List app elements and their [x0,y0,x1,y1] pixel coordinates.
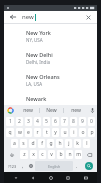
button[interactable]: z [20,150,28,159]
button[interactable]: y [52,128,59,137]
button[interactable]: g [47,139,54,148]
button[interactable]: f [38,139,45,148]
staticText: y [54,129,57,136]
button[interactable]: Back [8,12,18,22]
button[interactable]: Backspace [84,150,95,159]
button[interactable]: e [25,128,32,137]
staticText: k [76,140,79,147]
button[interactable]: c [39,150,46,159]
button[interactable]: Recent apps [62,172,74,183]
button[interactable]: 6 [52,117,59,126]
staticText: t [46,129,48,136]
button[interactable]: r [34,128,41,137]
button[interactable]: ?123 [5,161,19,171]
staticText: Newark [26,95,47,102]
staticText: ?123 [8,164,17,169]
button[interactable]: Shift [6,150,18,159]
button[interactable]: 0 [88,117,95,126]
button[interactable]: j [65,139,72,148]
button[interactable]: 4 [34,117,41,126]
staticText: Delhi, India [26,59,51,65]
button[interactable]: 3 [25,117,32,126]
button[interactable]: 1 [6,117,14,126]
button[interactable]: q [6,128,14,137]
button[interactable]: w [16,128,23,137]
button[interactable]: New Delhi [4,49,97,67]
staticText: . [76,163,78,170]
button[interactable]: New Orleans [4,71,97,89]
button[interactable]: v [48,150,55,159]
button[interactable]: Screenshot [80,172,92,183]
button[interactable]: i [70,128,77,137]
staticText: LA, USA [26,81,43,87]
button[interactable]: d [29,139,36,148]
staticText: 9 [81,118,84,125]
staticText: 7 [63,118,66,125]
button[interactable]: o [79,128,86,137]
staticText: h [58,140,62,147]
button[interactable]: New [40,105,63,115]
staticText: r [36,129,39,136]
staticText: new [23,107,33,114]
button[interactable]: t [43,128,50,137]
button[interactable]: new [22,13,83,21]
button[interactable]: u [61,128,68,137]
button[interactable]: 2 [16,117,23,126]
button[interactable]: Home [45,172,57,183]
staticText: u [63,129,67,136]
button[interactable]: Change keyboard language [26,161,35,171]
button[interactable]: p [88,128,95,137]
staticText: l [86,140,88,147]
button[interactable]: 8 [70,117,77,126]
staticText: new [22,13,34,21]
button[interactable]: x [30,150,37,159]
button[interactable]: 9 [79,117,86,126]
button[interactable]: Hide keyboard [10,172,22,183]
staticText: p [90,129,94,136]
staticText: b [59,151,63,158]
staticText: New [46,107,57,114]
button[interactable]: b [57,150,64,159]
button[interactable]: 7 [61,117,68,126]
button[interactable]: m [75,150,82,159]
button[interactable]: 5 [43,117,50,126]
button[interactable]: Space [35,161,73,171]
staticText: 3 [27,118,30,125]
button[interactable]: Clear search [83,12,93,22]
button[interactable]: s [20,139,27,148]
staticText: 2 [18,118,21,125]
staticText: x [32,151,35,158]
button[interactable]: Google search [4,105,16,115]
staticText: c [41,151,44,158]
button[interactable]: n [66,150,73,159]
button[interactable]: Newark [4,93,97,105]
button[interactable]: l [83,139,90,148]
button[interactable]: a [11,139,18,148]
button[interactable]: h [56,139,63,148]
staticText: s [22,140,25,147]
staticText: i [73,129,75,136]
staticText: 5 [45,118,48,125]
button[interactable]: Search [81,161,96,171]
button[interactable]: new [64,105,87,115]
staticText: New Orleans [26,73,60,80]
staticText: m [76,151,81,158]
staticText: a [13,140,16,147]
button[interactable]: Back [27,172,39,183]
staticText: 8 [72,118,75,125]
staticText: NY, USA [26,37,43,43]
button[interactable]: Voice input [87,105,97,115]
staticText: 6 [54,118,57,125]
staticText: , [22,163,24,170]
staticText: e [27,129,30,136]
staticText: w [18,129,22,136]
staticText: 4 [36,118,39,125]
staticText: f [41,140,43,147]
button[interactable]: . [73,161,81,171]
staticText: j [68,140,70,147]
staticText: English [48,164,61,169]
button[interactable]: New York [4,27,97,45]
button[interactable]: new [16,105,39,115]
button[interactable]: k [74,139,81,148]
button[interactable]: , [19,161,26,171]
